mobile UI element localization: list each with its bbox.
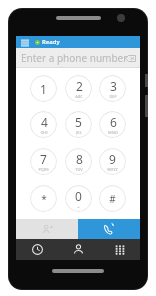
staticText: * <box>41 192 47 206</box>
button[interactable]: 6 <box>99 111 126 138</box>
staticText: 7 <box>40 151 47 167</box>
staticText: 3 <box>110 78 117 94</box>
staticText: 9 <box>109 151 116 167</box>
staticText: 2 <box>76 78 83 94</box>
button[interactable]: 9 <box>99 148 126 175</box>
button[interactable]: 0 <box>65 185 92 212</box>
button[interactable]: 1 <box>30 75 57 102</box>
staticText: Ready <box>42 38 60 46</box>
button[interactable]: # <box>99 185 126 212</box>
button[interactable]: 8 <box>65 148 92 175</box>
button[interactable]: Backspace <box>123 51 137 65</box>
button[interactable]: 4 <box>30 111 57 138</box>
staticText: 5 <box>75 114 82 130</box>
staticText: 6 <box>110 114 117 130</box>
staticText: 0 <box>75 188 82 204</box>
button[interactable]: 2 <box>65 75 92 102</box>
staticText: + <box>77 204 80 209</box>
staticText: DEF <box>109 94 117 99</box>
button[interactable]: Contacts <box>58 239 99 260</box>
button[interactable]: 3 <box>99 75 126 102</box>
button[interactable]: Recents <box>16 239 58 260</box>
staticText: # <box>109 192 116 206</box>
staticText: WXYZ <box>107 167 118 172</box>
button[interactable]: 7 <box>30 148 57 175</box>
button[interactable]: * <box>30 185 57 212</box>
staticText: JKL <box>76 130 82 135</box>
staticText: 1 <box>40 81 47 97</box>
button[interactable]: Call <box>78 219 140 239</box>
button[interactable]: 5 <box>65 111 92 138</box>
staticText: Enter a phone number <box>21 51 128 65</box>
staticText: GHI <box>40 130 48 135</box>
staticText: MNO <box>108 130 118 135</box>
button[interactable]: Menu <box>19 37 30 48</box>
staticText: ABC <box>75 94 83 99</box>
staticText: 4 <box>41 114 48 130</box>
staticText: TUV <box>75 167 83 172</box>
button[interactable]: Enter a phone number <box>16 48 140 68</box>
staticText: 8 <box>76 151 83 167</box>
button[interactable]: Dialpad <box>99 239 140 260</box>
staticText: PQRS <box>38 167 49 172</box>
